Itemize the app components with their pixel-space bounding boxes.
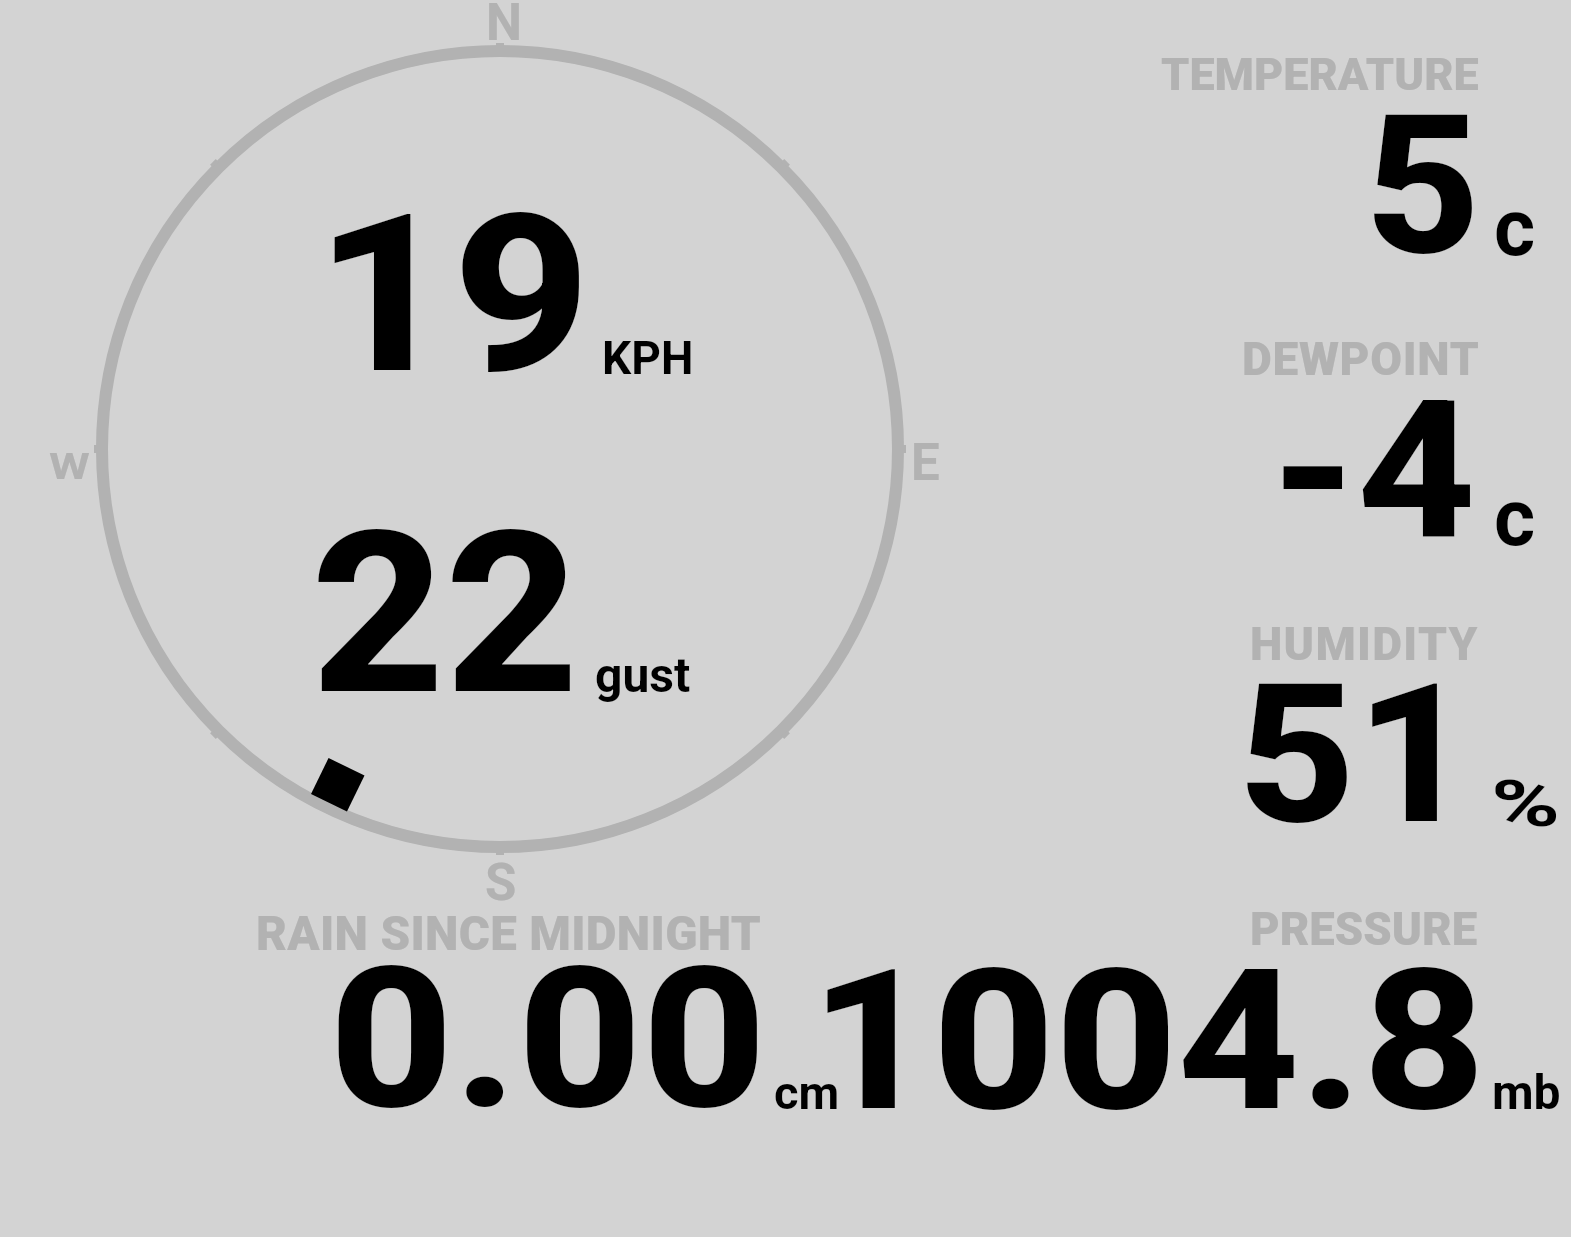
staticText: S [485,853,517,913]
staticText: 5 [1365,73,1481,299]
staticText: cm [774,1065,840,1120]
staticText: W [49,445,91,488]
staticText: % [1491,767,1561,842]
staticText: c [1494,472,1536,565]
button[interactable]: Temperature [1090,30,1570,270]
button[interactable]: Pressure [850,900,1570,1130]
staticText: HUMIDITY [1250,617,1479,671]
button[interactable]: Humidity [1090,600,1570,840]
staticText: 0.00 [329,926,767,1154]
staticText: E [911,433,940,493]
staticText: PRESSURE [1250,903,1478,956]
staticText: -4 [1270,359,1476,582]
staticText: N [486,0,522,53]
staticText: TEMPERATURE [1161,48,1479,101]
staticText: c [1494,182,1536,275]
staticText: 22 [311,483,580,746]
staticText: 51 [1238,641,1474,868]
button[interactable]: Dewpoint [1090,320,1570,560]
staticText: gust [595,647,691,703]
staticText: mb [1492,1064,1561,1120]
button[interactable]: Rain since midnight [230,900,850,1130]
staticText: DEWPOINT [1242,332,1480,386]
button[interactable]: Wind speed and direction [85,35,915,865]
staticText: 1004.8 [810,927,1486,1156]
staticText: 19 [315,167,591,423]
staticText: RAIN SINCE MIDNIGHT [256,906,762,962]
staticText: KPH [602,331,694,385]
